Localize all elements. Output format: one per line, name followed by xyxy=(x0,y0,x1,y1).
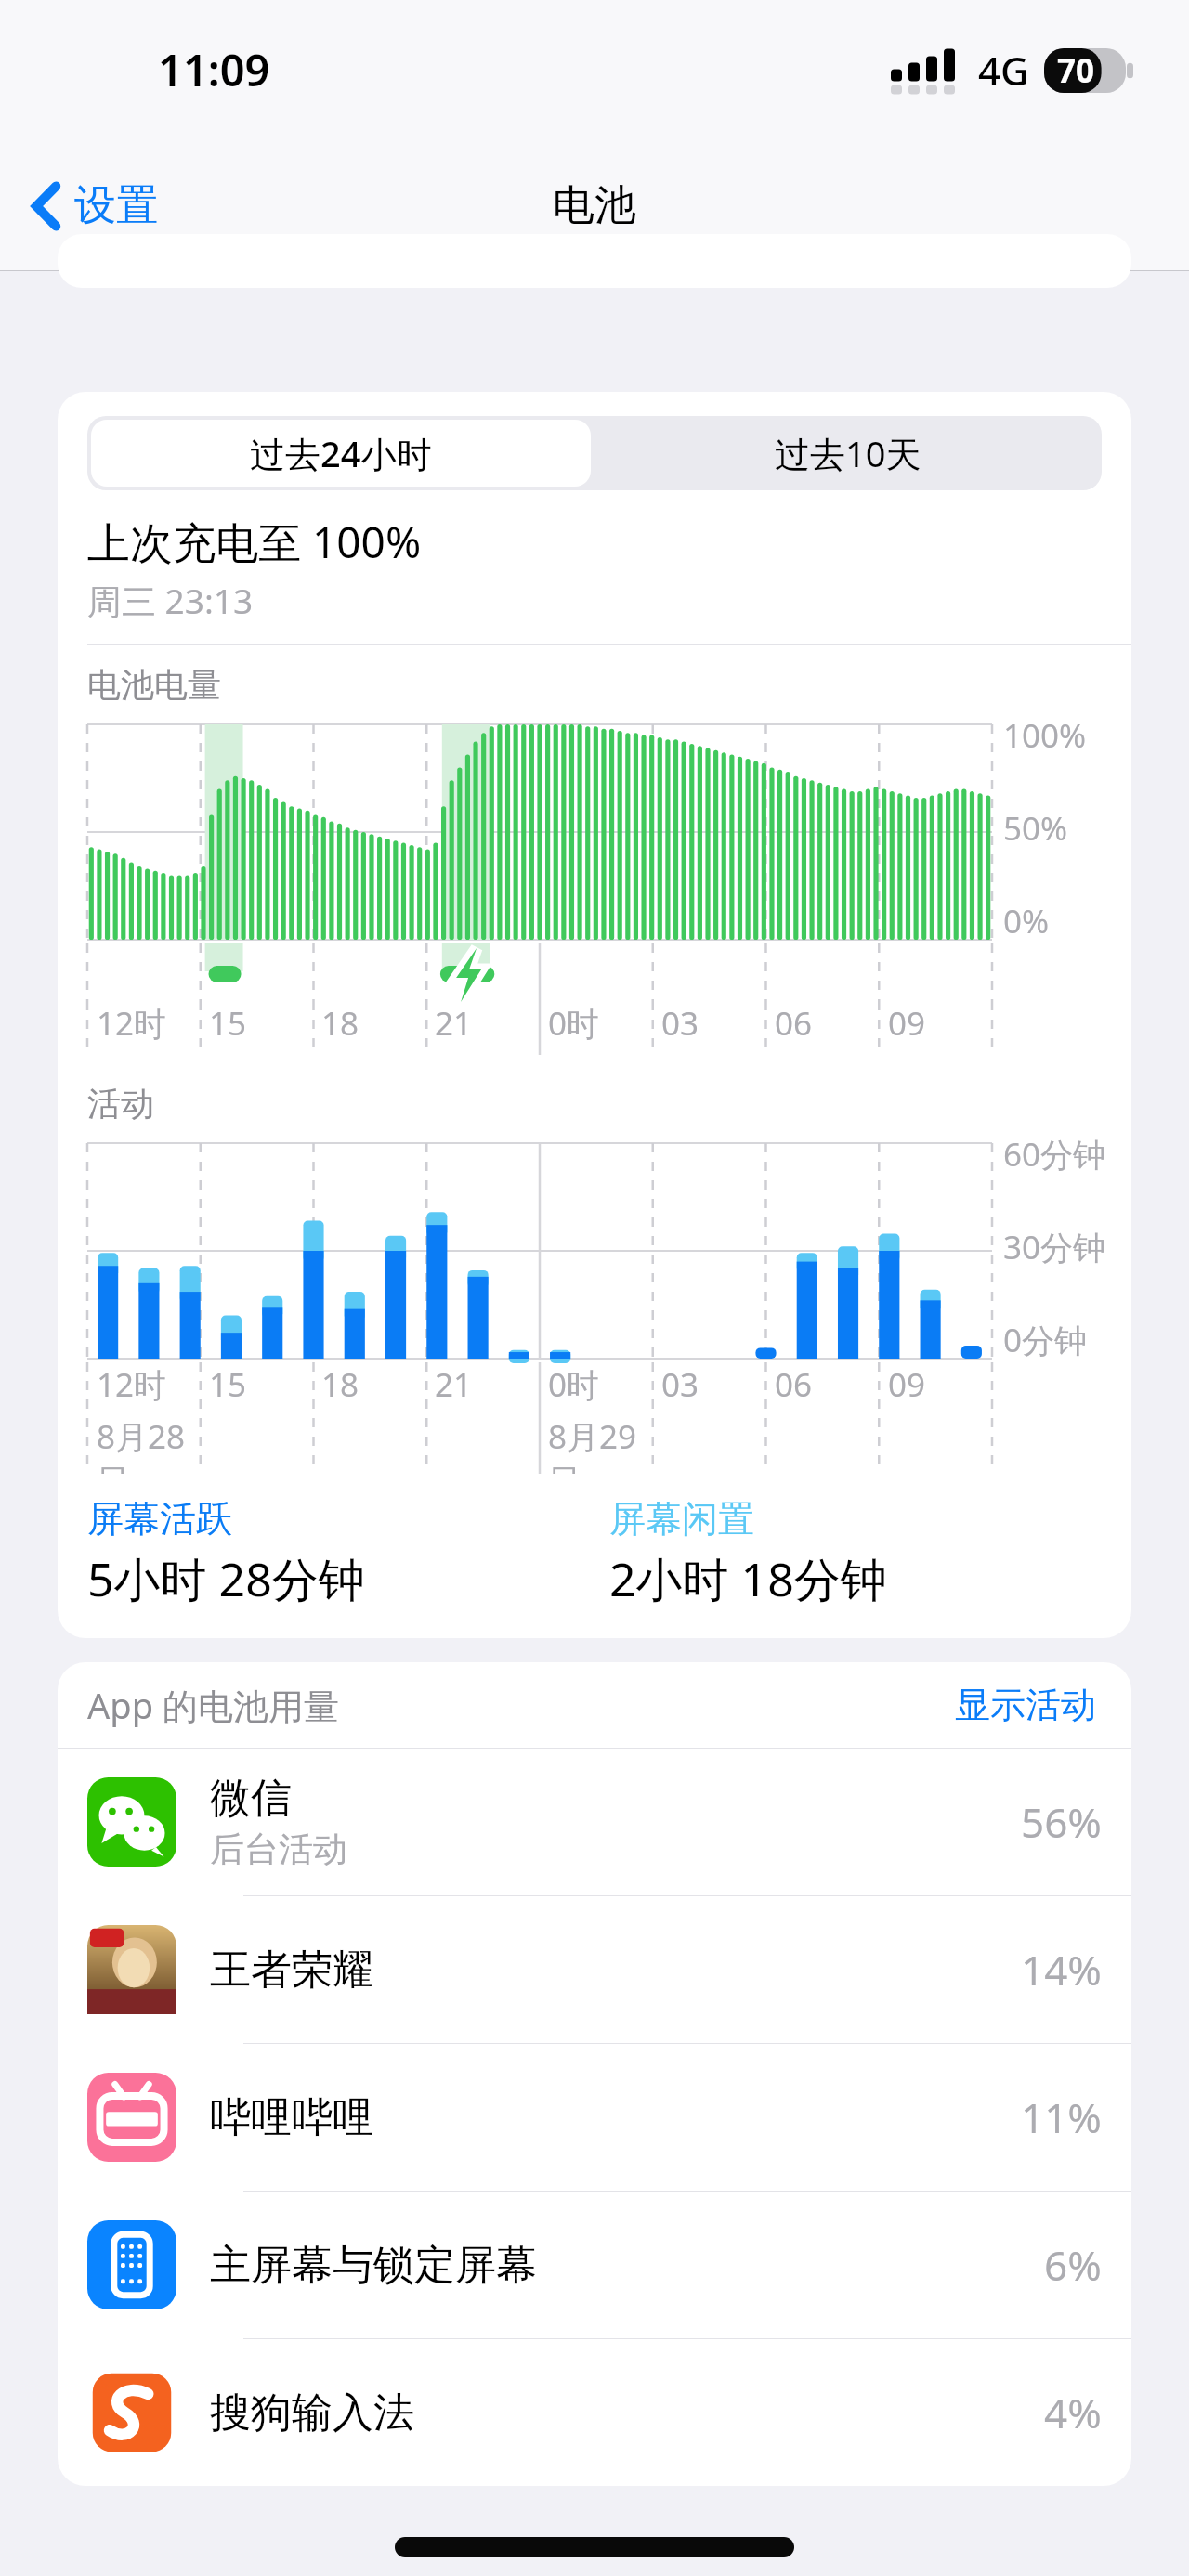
button[interactable]: 返回 xyxy=(32,179,158,232)
staticText: 09 xyxy=(888,1001,926,1046)
staticText: 09 xyxy=(888,1362,926,1407)
staticText: 18 xyxy=(321,1001,359,1046)
staticText: 周三 23:13 xyxy=(87,577,254,624)
staticText: 6% xyxy=(1044,2237,1102,2293)
staticText: 搜狗输入法 xyxy=(210,2387,414,2439)
staticText: App 的电池用量 xyxy=(87,1681,339,1729)
staticText: 电池电量 xyxy=(87,664,221,706)
staticText: 15 xyxy=(209,1001,247,1046)
button[interactable]: 主屏幕与锁定屏幕 xyxy=(58,2192,1131,2338)
staticText: 12时 xyxy=(97,1001,167,1046)
staticText: 03 xyxy=(661,1362,699,1407)
staticText: 03 xyxy=(661,1001,699,1046)
staticText: 11:09 xyxy=(158,40,270,99)
staticText: 06 xyxy=(775,1001,813,1046)
staticText: 过去10天 xyxy=(775,429,921,477)
staticText: 30分钟 xyxy=(1003,1225,1106,1269)
staticText: 18 xyxy=(321,1362,359,1407)
button[interactable]: 哔哩哔哩 xyxy=(58,2044,1131,2191)
staticText: 设置 xyxy=(74,179,158,232)
staticText: 4G xyxy=(978,44,1029,97)
staticText: 100% xyxy=(1003,713,1087,758)
staticText: 11% xyxy=(1021,2089,1102,2145)
staticText: 电池 xyxy=(553,179,636,232)
staticText: 21 xyxy=(435,1001,473,1046)
staticText: 12时 xyxy=(97,1362,167,1407)
staticText: 15 xyxy=(209,1362,247,1407)
button[interactable]: 过去24小时 xyxy=(91,420,591,487)
staticText: 哔哩哔哩 xyxy=(210,2092,373,2143)
staticText: 王者荣耀 xyxy=(210,1945,373,1996)
staticText: 70 xyxy=(1057,48,1095,93)
staticText: 过去24小时 xyxy=(250,429,432,477)
staticText: 60分钟 xyxy=(1003,1132,1106,1177)
staticText: 21 xyxy=(435,1362,473,1407)
button[interactable]: 搜狗输入法 xyxy=(58,2339,1131,2486)
staticText: 8月29日 xyxy=(548,1414,652,1474)
staticText: 微信 xyxy=(210,1773,292,1824)
button[interactable]: 微信 xyxy=(58,1749,1131,1895)
staticText: 0% xyxy=(1003,899,1050,943)
staticText: 显示活动 xyxy=(955,1683,1096,1727)
staticText: 活动 xyxy=(87,1083,154,1125)
staticText: 2小时 18分钟 xyxy=(609,1547,887,1610)
staticText: 0时 xyxy=(548,1001,600,1046)
staticText: 4% xyxy=(1044,2385,1102,2440)
staticText: 0分钟 xyxy=(1003,1318,1088,1362)
staticText: 屏幕活跃 xyxy=(87,1496,232,1542)
staticText: 屏幕闲置 xyxy=(609,1496,754,1542)
staticText: 5小时 28分钟 xyxy=(87,1547,365,1610)
button[interactable]: 显示活动 xyxy=(949,1677,1102,1733)
staticText: 8月28日 xyxy=(97,1414,200,1474)
staticText: 56% xyxy=(1021,1794,1102,1850)
staticText: 06 xyxy=(775,1362,813,1407)
staticText: 后台活动 xyxy=(210,1828,347,1871)
button[interactable]: 王者荣耀 xyxy=(58,1896,1131,2043)
staticText: 50% xyxy=(1003,806,1068,851)
staticText: 14% xyxy=(1021,1942,1102,1997)
staticText: 0时 xyxy=(548,1362,600,1407)
button[interactable]: 过去10天 xyxy=(594,416,1102,490)
staticText: 上次充电至 100% xyxy=(87,513,422,571)
other: 返回 xyxy=(32,181,61,231)
staticText: 主屏幕与锁定屏幕 xyxy=(210,2240,537,2291)
